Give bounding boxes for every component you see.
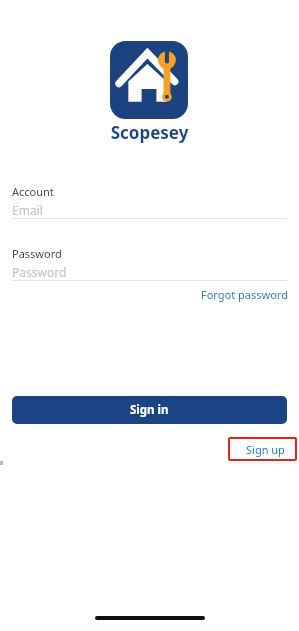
staticText: Account (12, 184, 54, 199)
staticText: Password (12, 264, 67, 280)
staticText: Email (12, 202, 43, 218)
button[interactable]: Sign up (228, 437, 297, 461)
button[interactable]: Forgot password (199, 285, 290, 304)
staticText: Scopesey (0, 121, 299, 144)
staticText: Forgot password (201, 287, 288, 302)
button[interactable]: Sign in (12, 396, 287, 424)
staticText: Sign in (130, 402, 169, 418)
staticText: Sign up (246, 442, 285, 457)
staticText: Password (12, 246, 62, 261)
